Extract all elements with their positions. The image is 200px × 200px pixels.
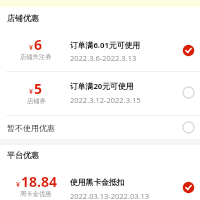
staticText: 6 [34, 35, 43, 54]
button[interactable]: Coupon selected [178, 40, 198, 60]
staticText: 2022.3.12-2022.3.15 [70, 95, 141, 105]
staticText: 使用黑卡金抵扣 [70, 177, 125, 187]
staticText: 2022.3.6-2022.3.13 [70, 53, 137, 63]
staticText: ¥ [29, 87, 34, 97]
staticText: 店铺关注券 [20, 53, 52, 61]
staticText: 2022.03.13-2022.03.13 [70, 191, 150, 200]
staticText: 店铺券 [27, 97, 46, 105]
staticText: 平台优惠 [7, 150, 39, 160]
button[interactable]: ¥ [0, 72, 200, 114]
button[interactable]: Discount selected [178, 177, 198, 197]
button[interactable]: Do not use a coupon [178, 117, 198, 137]
staticText: 5 [34, 79, 43, 98]
button[interactable]: Select coupon [178, 82, 198, 102]
staticText: 黑卡金优惠 [20, 190, 52, 198]
staticText: 暂不使用优惠 [7, 123, 55, 133]
staticText: ¥ [29, 43, 34, 53]
staticText: 18.84 [21, 172, 57, 191]
button[interactable]: ¥ [0, 28, 200, 70]
button[interactable]: ¥ [0, 165, 200, 200]
staticText: 订单满20元可使用 [70, 81, 134, 92]
staticText: ¥ [16, 180, 21, 190]
staticText: 店铺优惠 [7, 13, 39, 23]
staticText: 订单满6.01元可使用 [70, 40, 141, 51]
button[interactable]: 暂不使用优惠 [0, 115, 200, 139]
